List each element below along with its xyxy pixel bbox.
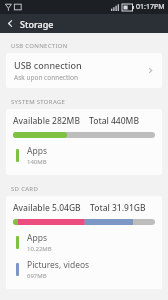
staticText: Total 440MB [89, 115, 139, 127]
staticText: Storage [20, 18, 54, 30]
staticText: Apps [27, 145, 47, 157]
button[interactable]: Apps [13, 229, 155, 256]
staticText: 10.22MB [27, 245, 52, 253]
button[interactable]: Available 282MB [6, 109, 162, 175]
staticText: SD CARD [11, 185, 39, 193]
button[interactable]: Back [0, 14, 20, 33]
staticText: Ask upon connection [14, 73, 78, 82]
staticText: USB CONNECTION [11, 42, 68, 50]
button[interactable]: USB connection [6, 53, 162, 88]
staticText: Available 5.04GB [13, 202, 81, 214]
staticText: SYSTEM STORAGE [11, 98, 66, 106]
staticText: Pictures, videos [27, 259, 90, 271]
staticText: Apps [27, 232, 47, 244]
button[interactable]: Available 5.04GB [6, 196, 162, 289]
button[interactable]: Pictures, videos [13, 256, 155, 283]
staticText: 697MB [27, 272, 47, 280]
staticText: 01:17PM [136, 2, 165, 12]
button[interactable]: Apps [13, 142, 155, 169]
staticText: 140MB [27, 158, 47, 166]
staticText: Total 31.91GB [90, 202, 146, 214]
staticText: Available 282MB [13, 115, 80, 127]
staticText: USB connection [14, 59, 82, 71]
